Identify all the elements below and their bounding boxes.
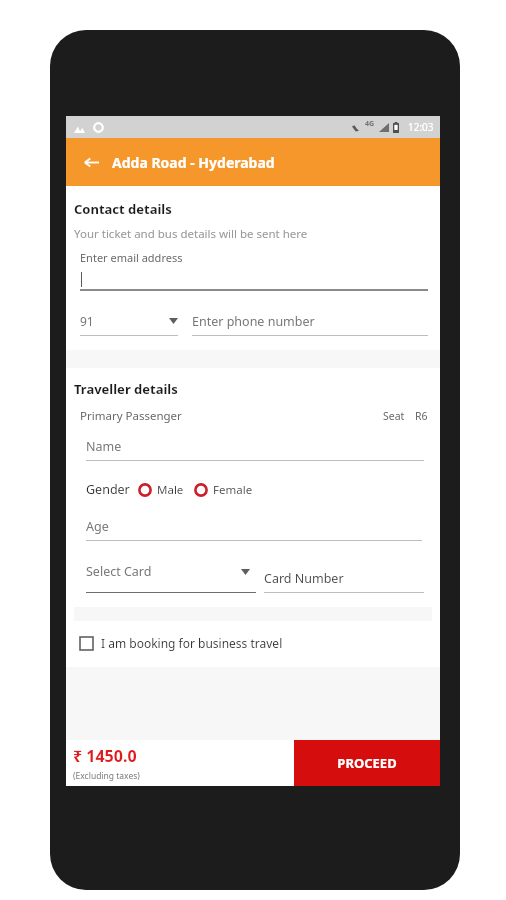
staticText: R6 — [415, 409, 428, 423]
button[interactable]: Age — [86, 518, 422, 541]
staticText: Gender — [86, 481, 130, 498]
staticText: Your ticket and bus details will be sent… — [74, 226, 308, 242]
button[interactable]: Male — [138, 482, 184, 498]
button[interactable]: Name — [86, 438, 424, 461]
button[interactable]: Select Card — [86, 563, 256, 593]
staticText: PROCEED — [337, 754, 397, 772]
staticText: (Excluding taxes) — [73, 770, 140, 782]
staticText: Enter phone number — [192, 313, 315, 330]
button[interactable]: Enter phone number — [192, 313, 428, 336]
staticText: 4G — [365, 119, 375, 129]
button[interactable]: 91 — [80, 313, 178, 336]
staticText: 12:03 — [408, 120, 434, 134]
staticText: 91 — [80, 313, 94, 329]
staticText: Traveller details — [74, 380, 178, 398]
staticText: I am booking for business travel — [101, 635, 283, 651]
staticText: Enter email address — [80, 250, 183, 265]
staticText: Seat — [383, 409, 405, 423]
staticText: Name — [86, 438, 122, 455]
button[interactable]: Female — [194, 482, 253, 498]
button[interactable]: PROCEED — [294, 740, 440, 786]
staticText: Female — [213, 482, 253, 498]
staticText: Card Number — [264, 570, 344, 587]
staticText: Primary Passenger — [80, 408, 182, 424]
button[interactable]: Back — [78, 149, 104, 175]
staticText: Adda Road - Hyderabad — [112, 153, 275, 172]
staticText: Contact details — [74, 200, 172, 218]
staticText: Age — [86, 518, 109, 535]
button[interactable]: Enter email address — [80, 250, 428, 291]
staticText: ₹ 1450.0 — [73, 745, 137, 767]
button[interactable]: Card Number — [264, 570, 424, 593]
button[interactable]: I am booking for business travel — [80, 635, 432, 651]
staticText: Male — [157, 482, 184, 498]
staticText: Select Card — [86, 563, 152, 580]
